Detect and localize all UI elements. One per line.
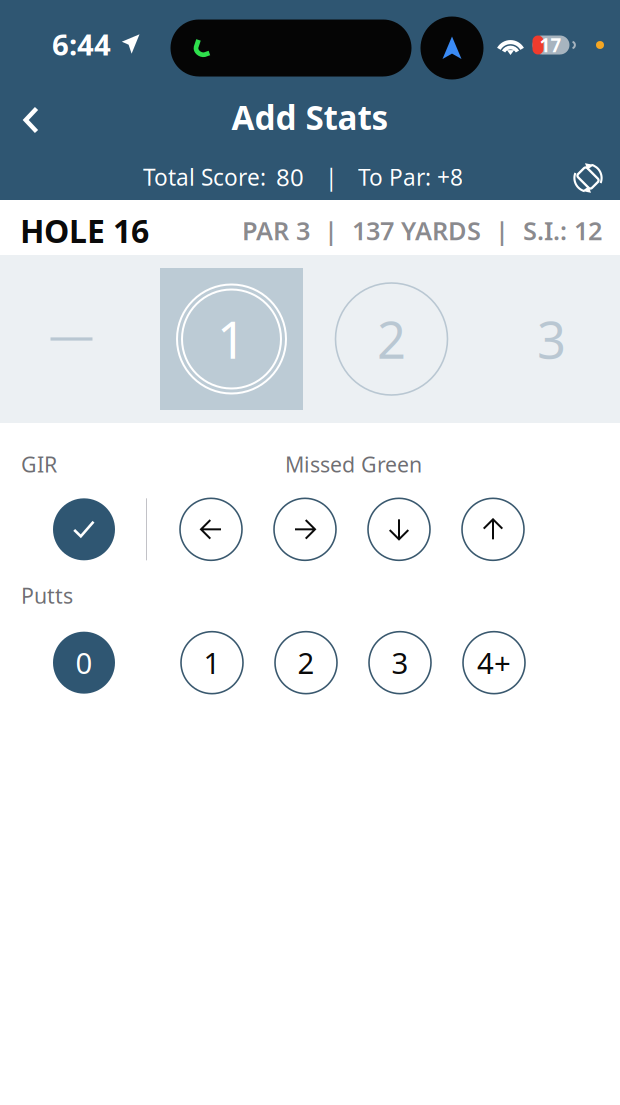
staticText: PAR 3 | 137 YARDS | S.I.: 12 [242,214,602,247]
button[interactable]: Green in regulation [53,498,115,560]
staticText: 3 [537,305,566,373]
staticText: 1 [203,643,220,682]
staticText: Add Stats [231,95,388,139]
staticText: 80 [276,161,304,193]
staticText: 0 [75,643,92,682]
staticText: 2 [297,643,314,682]
staticText: Missed Green [285,450,422,478]
button[interactable]: Missed long [462,498,524,560]
staticText: Putts [21,581,73,610]
button[interactable]: Back [0,92,62,138]
button[interactable]: 2 [275,632,337,694]
staticText: To Par: +8 [358,162,463,192]
button[interactable]: 3 [369,632,431,694]
button[interactable]: 0 [53,632,115,694]
button[interactable]: 2 [320,268,463,410]
button[interactable]: 3 [480,268,620,410]
staticText: | [325,162,337,192]
staticText: 2 [377,305,406,373]
button[interactable]: 1 [160,268,303,410]
staticText: GIR [21,450,57,478]
staticText: 1 [217,305,246,373]
button[interactable]: Missed left [180,498,242,560]
staticText: 4+ [477,643,511,682]
button[interactable]: Clear score [0,268,143,410]
staticText: 17 [539,33,561,57]
staticText: Total Score: [143,162,266,192]
button[interactable]: 4+ [463,632,525,694]
button[interactable]: Rotate screen [562,148,614,194]
staticText: HOLE 16 [20,209,149,252]
staticText: 3 [391,643,408,682]
staticText: 6:44 [52,24,111,63]
button[interactable]: Missed right [274,498,336,560]
button[interactable]: 1 [181,632,243,694]
button[interactable]: Missed short [368,498,430,560]
